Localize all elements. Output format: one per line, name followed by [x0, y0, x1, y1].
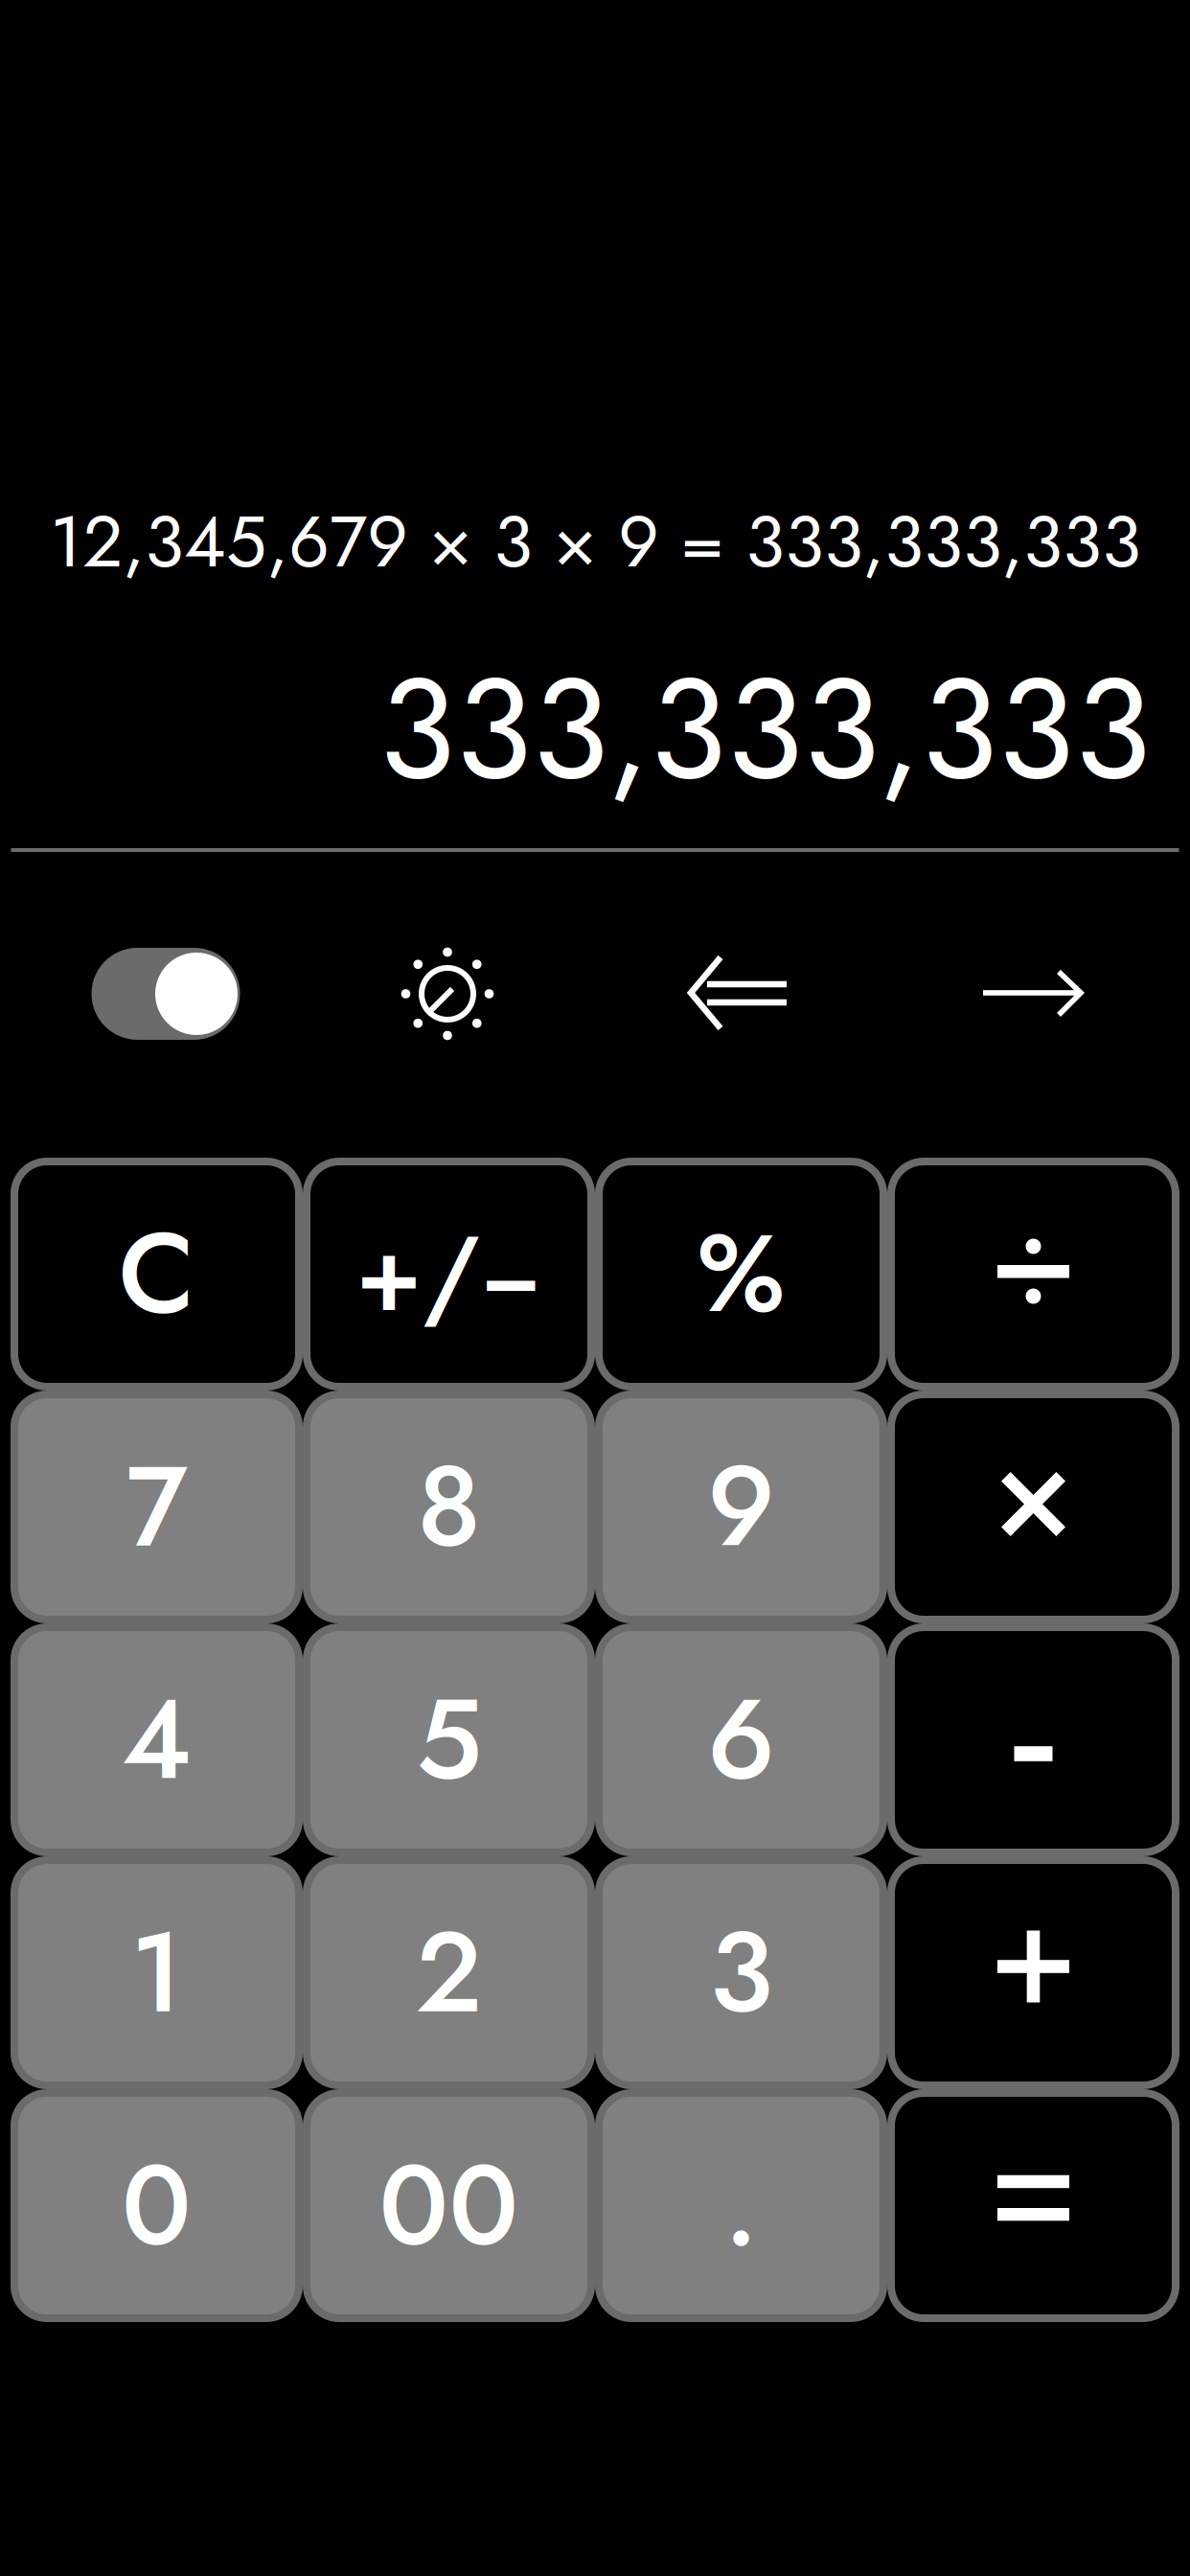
button[interactable]: % — [595, 1158, 887, 1391]
button[interactable]: C — [11, 1158, 303, 1391]
staticText: 4 — [122, 1660, 192, 1820]
staticText: 00 — [379, 2125, 519, 2286]
button[interactable]: . — [595, 2089, 887, 2322]
button[interactable]: 2 — [303, 1856, 595, 2089]
button[interactable] — [887, 1623, 1179, 1856]
staticText: 7 — [126, 1427, 187, 1587]
staticText: 0 — [122, 2125, 192, 2286]
button[interactable]: 0 — [11, 2089, 303, 2322]
button[interactable]: 8 — [303, 1391, 595, 1623]
button[interactable]: 3 — [595, 1856, 887, 2089]
staticText: 6 — [707, 1660, 775, 1820]
staticText: 12,345,679 × 3 × 9 = 333,333,333 — [50, 490, 1141, 593]
button[interactable]: 4 — [11, 1623, 303, 1856]
staticText: 1 — [130, 1892, 183, 2053]
button[interactable] — [887, 1856, 1179, 2089]
staticText: % — [697, 1197, 785, 1352]
button[interactable] — [887, 1158, 1179, 1391]
button[interactable]: 9 — [595, 1391, 887, 1623]
staticText: 5 — [416, 1660, 482, 1820]
button[interactable] — [887, 1391, 1179, 1623]
staticText: +/− — [355, 1198, 542, 1350]
button[interactable]: 1 — [11, 1856, 303, 2089]
button[interactable]: 5 — [303, 1623, 595, 1856]
button[interactable]: Forward — [973, 935, 1093, 1050]
button[interactable]: 7 — [11, 1391, 303, 1623]
button[interactable]: 00 — [303, 2089, 595, 2322]
staticText: 333,333,333 — [378, 628, 1151, 831]
staticText: 9 — [707, 1427, 775, 1587]
staticText: 2 — [415, 1892, 482, 2053]
button[interactable]: +/− — [303, 1158, 595, 1391]
staticText: C — [118, 1194, 195, 1354]
button[interactable] — [887, 2089, 1179, 2322]
staticText: 8 — [417, 1427, 481, 1587]
button[interactable]: Toggle — [89, 946, 242, 1042]
button[interactable]: Backspace — [678, 935, 799, 1050]
button[interactable]: Theme — [390, 936, 505, 1051]
button[interactable]: 6 — [595, 1623, 887, 1856]
staticText: 3 — [709, 1892, 773, 2053]
staticText: . — [724, 2125, 758, 2286]
